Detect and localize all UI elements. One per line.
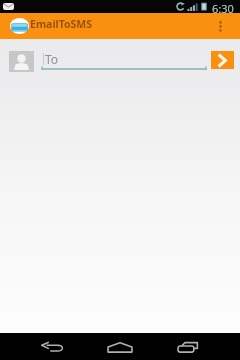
staticText: 6:30: [212, 1, 234, 14]
button[interactable]: More options: [210, 13, 234, 39]
button[interactable]: Send: [211, 51, 234, 69]
button[interactable]: Home: [100, 333, 139, 360]
button[interactable]: Pick contact: [9, 51, 34, 72]
button[interactable]: Back: [33, 333, 71, 360]
staticText: EmailToSMS: [30, 17, 93, 31]
button[interactable]: Recent apps: [168, 333, 206, 360]
staticText: To: [45, 51, 59, 67]
